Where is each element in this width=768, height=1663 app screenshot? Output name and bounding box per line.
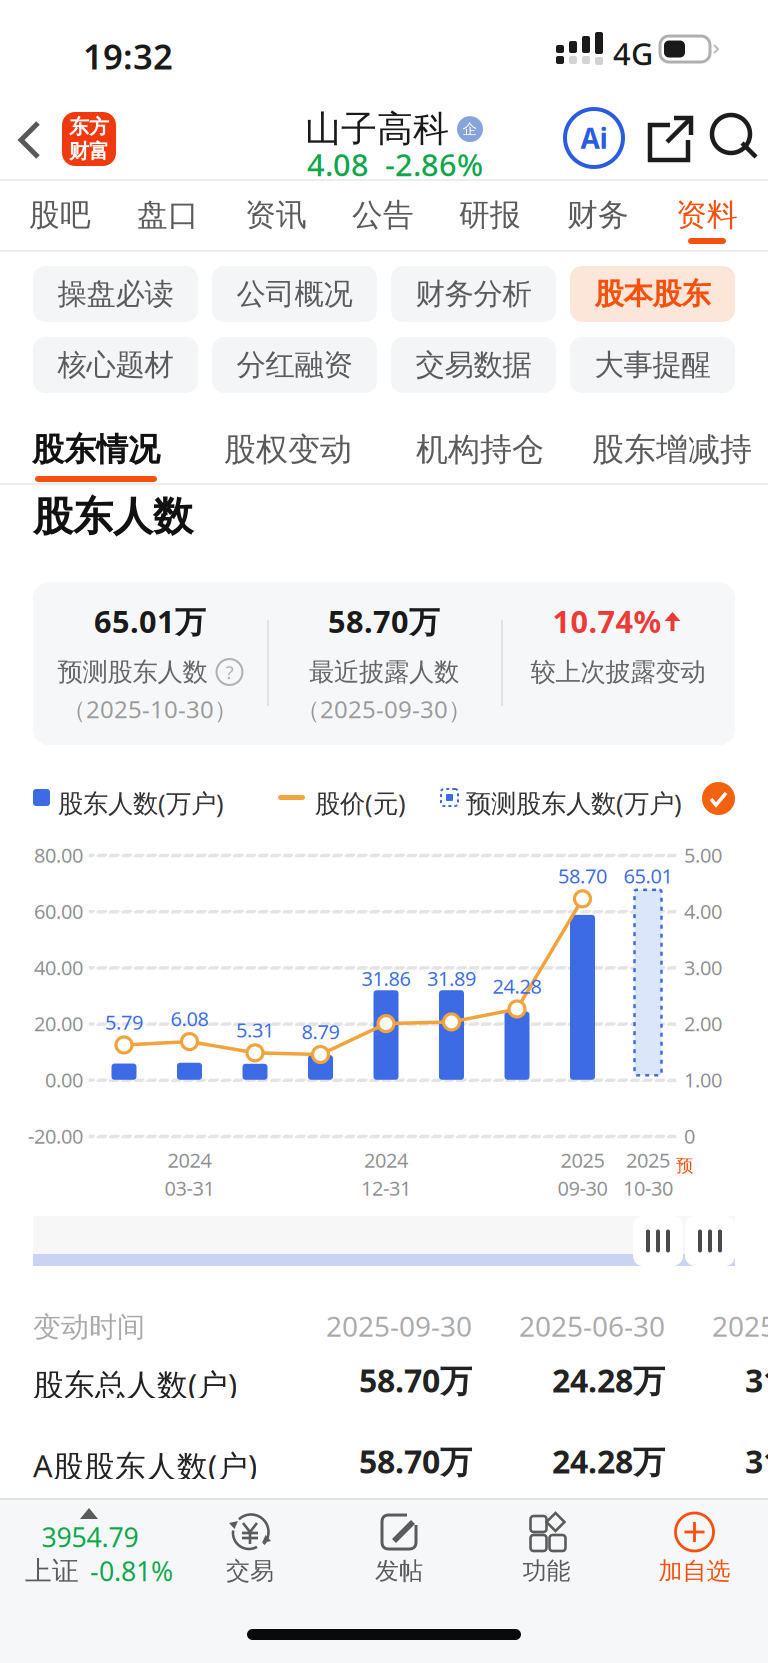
button[interactable]: 资讯 xyxy=(224,181,328,252)
button[interactable]: 范围手柄 xyxy=(685,1216,735,1266)
button[interactable]: 资料 xyxy=(655,181,759,252)
staticText: 31.89万 xyxy=(745,1359,768,1401)
staticText: 研报 xyxy=(459,196,521,234)
button[interactable]: 公告 xyxy=(331,181,435,252)
staticText: 65.01万 xyxy=(94,601,206,641)
staticText: 机构持仓 xyxy=(416,430,544,469)
staticText: 09-30 xyxy=(557,1175,607,1201)
staticText: 60.00 xyxy=(34,898,83,924)
staticText: 65.01 xyxy=(623,863,672,889)
staticText: （2025-09-30） xyxy=(296,693,472,725)
staticText: 最近披露人数 xyxy=(309,656,459,687)
staticText: （2025-10-30） xyxy=(62,693,238,725)
staticText: 股吧 xyxy=(29,196,91,234)
staticText: 5.00 xyxy=(684,842,722,868)
staticText: 4.00 xyxy=(684,898,722,924)
staticText: 4G xyxy=(613,33,653,74)
button[interactable]: 股权变动 xyxy=(192,430,384,484)
button[interactable]: 东方财富 xyxy=(62,112,116,166)
staticText: 2025-09-30 xyxy=(326,1307,472,1345)
staticText: 8.79 xyxy=(301,1018,339,1045)
button[interactable]: 公司概况 xyxy=(212,266,377,322)
button[interactable]: 搜索 xyxy=(706,105,764,171)
staticText: 大事提醒 xyxy=(594,347,710,383)
staticText: 58.70 xyxy=(558,863,607,889)
staticText: 80.00 xyxy=(34,842,83,868)
staticText: 加自选 xyxy=(658,1556,730,1586)
staticText: 股权变动 xyxy=(224,430,352,469)
button[interactable]: 返回 xyxy=(10,99,62,177)
staticText: 24.28万 xyxy=(552,1440,665,1482)
staticText: 2.00 xyxy=(684,1010,722,1037)
staticText: 预 xyxy=(676,1155,693,1176)
staticText: 4.08 xyxy=(307,144,369,185)
button[interactable]: 分享 xyxy=(637,105,703,171)
staticText: 企 xyxy=(462,120,477,138)
staticText: 山子高科 xyxy=(305,107,449,151)
staticText: -2.86% xyxy=(385,144,483,185)
button[interactable]: 盘口 xyxy=(116,181,220,252)
button[interactable]: 财务 xyxy=(546,181,650,252)
button[interactable]: AI 助手 xyxy=(561,105,627,171)
button[interactable]: 分红融资 xyxy=(212,337,377,393)
button[interactable]: 核心题材 xyxy=(33,337,198,393)
staticText: 10.74% xyxy=(552,601,661,641)
staticText: 财务分析 xyxy=(415,276,531,312)
staticText: A股股东人数(户) xyxy=(33,1445,257,1486)
staticText: 2024 xyxy=(167,1147,211,1173)
staticText: 0 xyxy=(684,1123,695,1149)
staticText: 1.00 xyxy=(684,1066,722,1093)
staticText: 5.79 xyxy=(105,1009,143,1035)
button[interactable]: 机构持仓 xyxy=(384,430,576,484)
button[interactable]: 财务分析 xyxy=(391,266,556,322)
staticText: 预测股东人数(万户) xyxy=(466,786,682,820)
staticText: ? xyxy=(225,660,233,684)
staticText: 股东总人数(户) xyxy=(33,1364,237,1405)
staticText: 资讯 xyxy=(245,196,307,234)
staticText: 股东人数(万户) xyxy=(58,786,224,820)
staticText: 预测股东人数 xyxy=(57,656,207,687)
staticText: 分红融资 xyxy=(236,347,352,383)
staticText: Ai xyxy=(580,119,607,157)
staticText: 股东人数 xyxy=(33,492,193,541)
staticText: -0.81% xyxy=(90,1553,173,1589)
staticText: 12-31 xyxy=(361,1175,411,1201)
staticText: 发帖 xyxy=(375,1556,423,1586)
staticText: 40.00 xyxy=(34,954,83,981)
staticText: 公告 xyxy=(352,196,414,234)
staticText: 19:32 xyxy=(83,33,173,79)
staticText: 24.28 xyxy=(492,973,541,999)
staticText: 2024 xyxy=(364,1147,408,1173)
staticText: 核心题材 xyxy=(57,347,173,383)
staticText: 上证 xyxy=(25,1555,79,1587)
staticText: -20.00 xyxy=(28,1123,83,1149)
staticText: 公司概况 xyxy=(236,276,352,312)
button[interactable]: 操盘必读 xyxy=(33,266,198,322)
button[interactable]: 上证指数 xyxy=(0,1500,180,1600)
button[interactable]: 股吧 xyxy=(8,181,112,252)
staticText: 2025-03-31 xyxy=(712,1307,768,1345)
staticText: 股本股东 xyxy=(594,276,710,312)
button[interactable]: 发帖 xyxy=(337,1504,461,1596)
staticText: 31.89万 xyxy=(745,1440,768,1482)
staticText: 03-31 xyxy=(164,1175,214,1201)
button[interactable]: 大事提醒 xyxy=(570,337,735,393)
button[interactable]: 交易 xyxy=(188,1504,312,1596)
staticText: 58.70万 xyxy=(328,601,440,641)
staticText: 东方 xyxy=(69,114,109,139)
button[interactable]: 交易数据 xyxy=(391,337,556,393)
staticText: 股东增减持 xyxy=(592,430,752,469)
staticText: 58.70万 xyxy=(359,1440,472,1482)
staticText: 31.86 xyxy=(361,965,410,992)
button[interactable]: 股本股东 xyxy=(570,266,735,322)
button[interactable]: 研报 xyxy=(438,181,542,252)
staticText: 3954.79 xyxy=(41,1519,138,1555)
button[interactable]: 股东增减持 xyxy=(576,430,768,484)
button[interactable]: 功能 xyxy=(484,1504,608,1596)
button[interactable]: 加自选 xyxy=(632,1504,756,1596)
button[interactable]: 范围手柄 xyxy=(633,1216,683,1266)
staticText: 资料 xyxy=(676,196,738,234)
staticText: 0.00 xyxy=(45,1066,83,1093)
staticText: 58.70万 xyxy=(359,1359,472,1401)
button[interactable]: 股东情况 xyxy=(0,430,192,484)
